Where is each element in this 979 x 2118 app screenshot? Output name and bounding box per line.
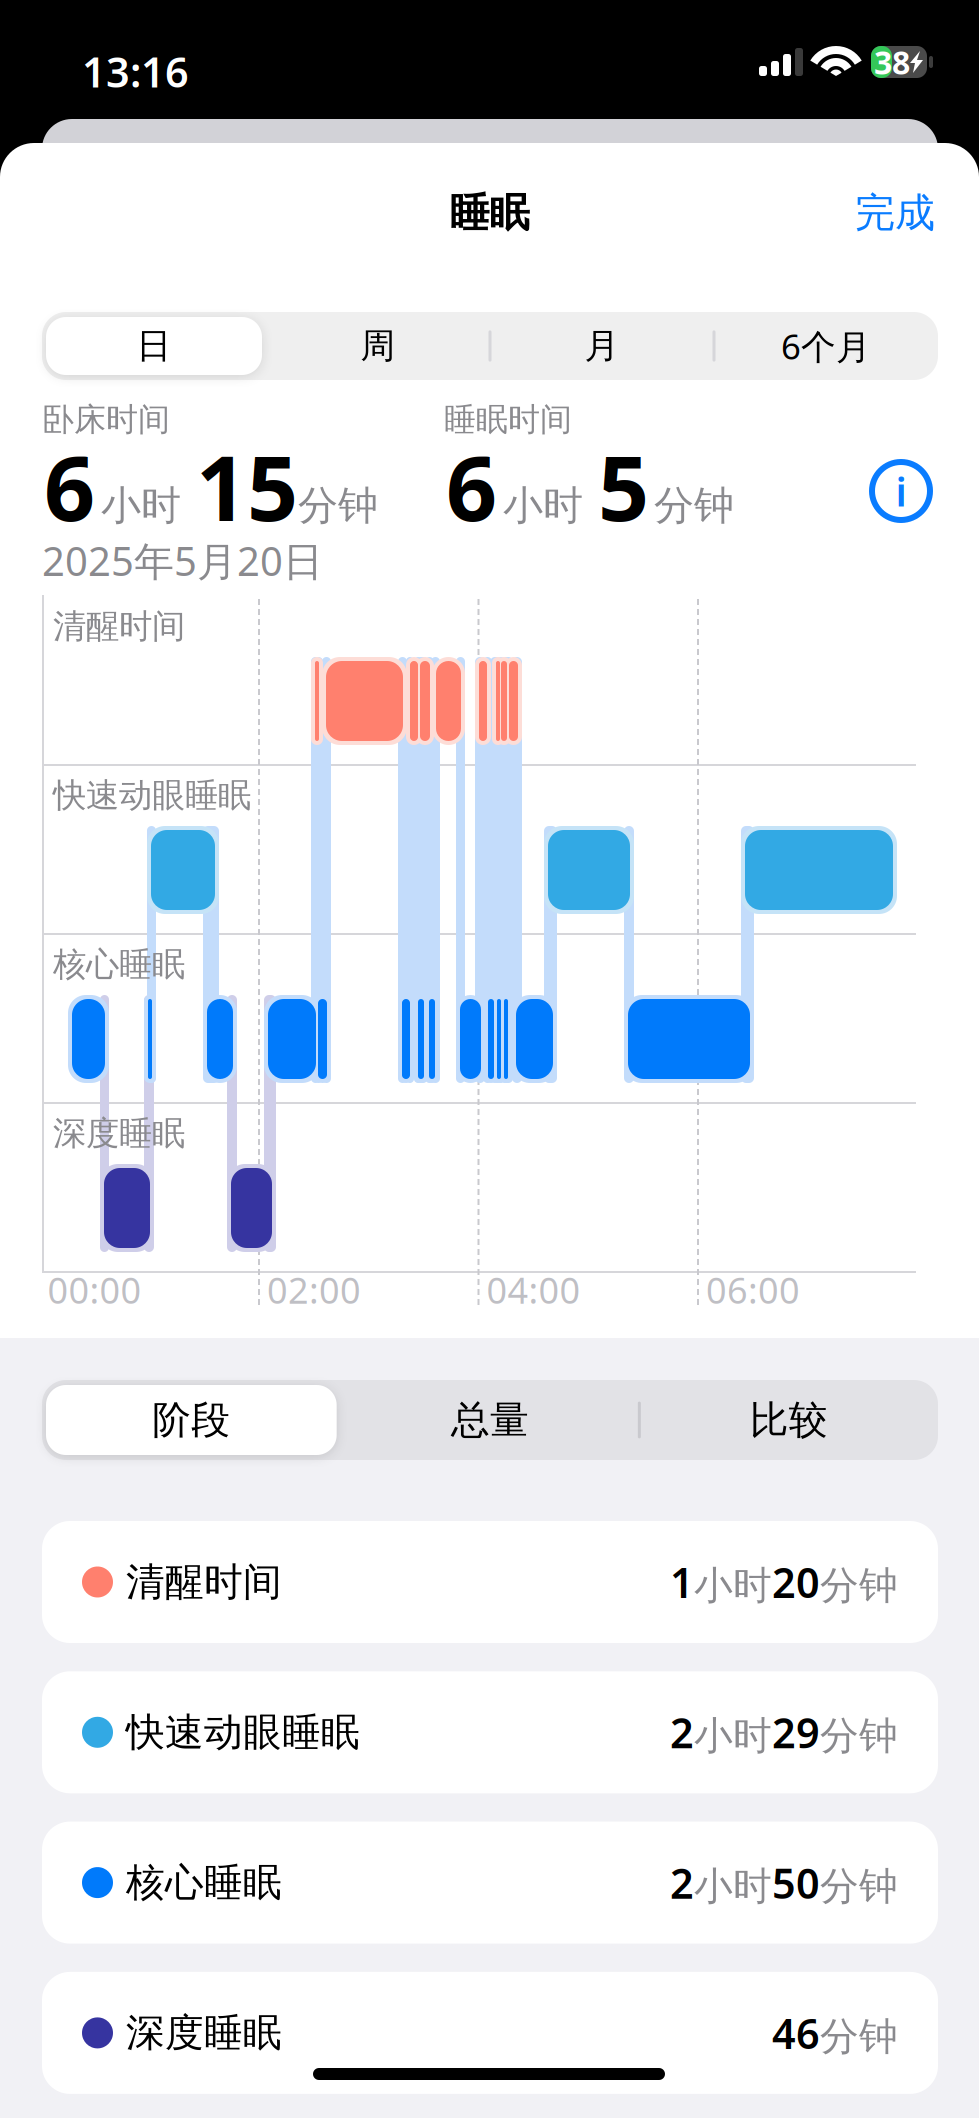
- staticText: 清醒时间: [53, 606, 185, 647]
- button[interactable]: 周: [266, 312, 490, 380]
- staticText: 小时: [694, 1562, 772, 1609]
- staticText: 38: [874, 41, 910, 83]
- staticText: 分钟: [820, 2013, 898, 2060]
- button[interactable]: 核心睡眠: [42, 1822, 938, 1944]
- staticText: 6: [44, 427, 95, 546]
- staticText: 6个月: [781, 323, 871, 369]
- staticText: 清醒时间: [126, 1558, 282, 1606]
- staticText: 2025年5月20日: [42, 534, 323, 587]
- staticText: 深度睡眠: [53, 1113, 185, 1154]
- staticText: 06:00: [706, 1266, 800, 1314]
- staticText: 00:00: [47, 1266, 141, 1314]
- staticText: 13:16: [82, 44, 189, 99]
- staticText: 2: [670, 1855, 694, 1910]
- staticText: 快速动眼睡眠: [53, 775, 251, 816]
- staticText: 15: [196, 427, 298, 546]
- button[interactable]: 清醒时间: [42, 1521, 938, 1643]
- staticText: 02:00: [267, 1266, 361, 1314]
- button[interactable]: 快速动眼睡眠: [42, 1671, 938, 1793]
- staticText: 总量: [451, 1396, 529, 1444]
- staticText: 卧床时间: [42, 400, 170, 439]
- staticText: 睡眠时间: [444, 400, 572, 439]
- staticText: 睡眠: [449, 188, 529, 237]
- staticText: 小时: [694, 1862, 772, 1910]
- staticText: 分钟: [820, 1562, 898, 1609]
- staticText: 小时: [503, 481, 583, 530]
- staticText: 深度睡眠: [126, 2009, 282, 2057]
- staticText: 分钟: [654, 481, 734, 530]
- button[interactable]: 总量: [341, 1380, 639, 1460]
- staticText: 50: [772, 1855, 820, 1910]
- staticText: 月: [584, 325, 619, 367]
- staticText: 周: [360, 325, 395, 367]
- staticText: 6: [446, 427, 497, 546]
- staticText: 阶段: [152, 1396, 230, 1444]
- staticText: 5: [598, 427, 649, 546]
- staticText: 04:00: [486, 1266, 580, 1314]
- staticText: 快速动眼睡眠: [126, 1709, 360, 1756]
- staticText: 20: [772, 1555, 820, 1609]
- staticText: 29: [772, 1705, 820, 1760]
- button[interactable]: 6个月: [714, 312, 938, 380]
- staticText: 核心睡眠: [126, 1859, 282, 1906]
- button[interactable]: 阶段: [42, 1380, 341, 1460]
- staticText: 分钟: [820, 1712, 898, 1760]
- staticText: 2: [670, 1705, 694, 1760]
- staticText: 日: [136, 325, 171, 367]
- staticText: 46: [772, 2005, 820, 2060]
- staticText: 完成: [855, 188, 935, 237]
- button[interactable]: 信息: [864, 454, 938, 528]
- button[interactable]: 完成: [815, 173, 975, 253]
- staticText: i: [895, 464, 906, 517]
- button[interactable]: 日: [42, 312, 266, 380]
- button[interactable]: 月: [490, 312, 714, 380]
- staticText: 核心睡眠: [53, 944, 185, 985]
- staticText: 小时: [694, 1712, 772, 1760]
- button[interactable]: 深度睡眠: [42, 1972, 938, 2094]
- staticText: 分钟: [820, 1862, 898, 1910]
- staticText: 分钟: [298, 481, 378, 530]
- staticText: 1: [670, 1555, 694, 1609]
- staticText: 比较: [750, 1396, 828, 1444]
- staticText: 小时: [101, 481, 181, 530]
- button[interactable]: 比较: [639, 1380, 938, 1460]
